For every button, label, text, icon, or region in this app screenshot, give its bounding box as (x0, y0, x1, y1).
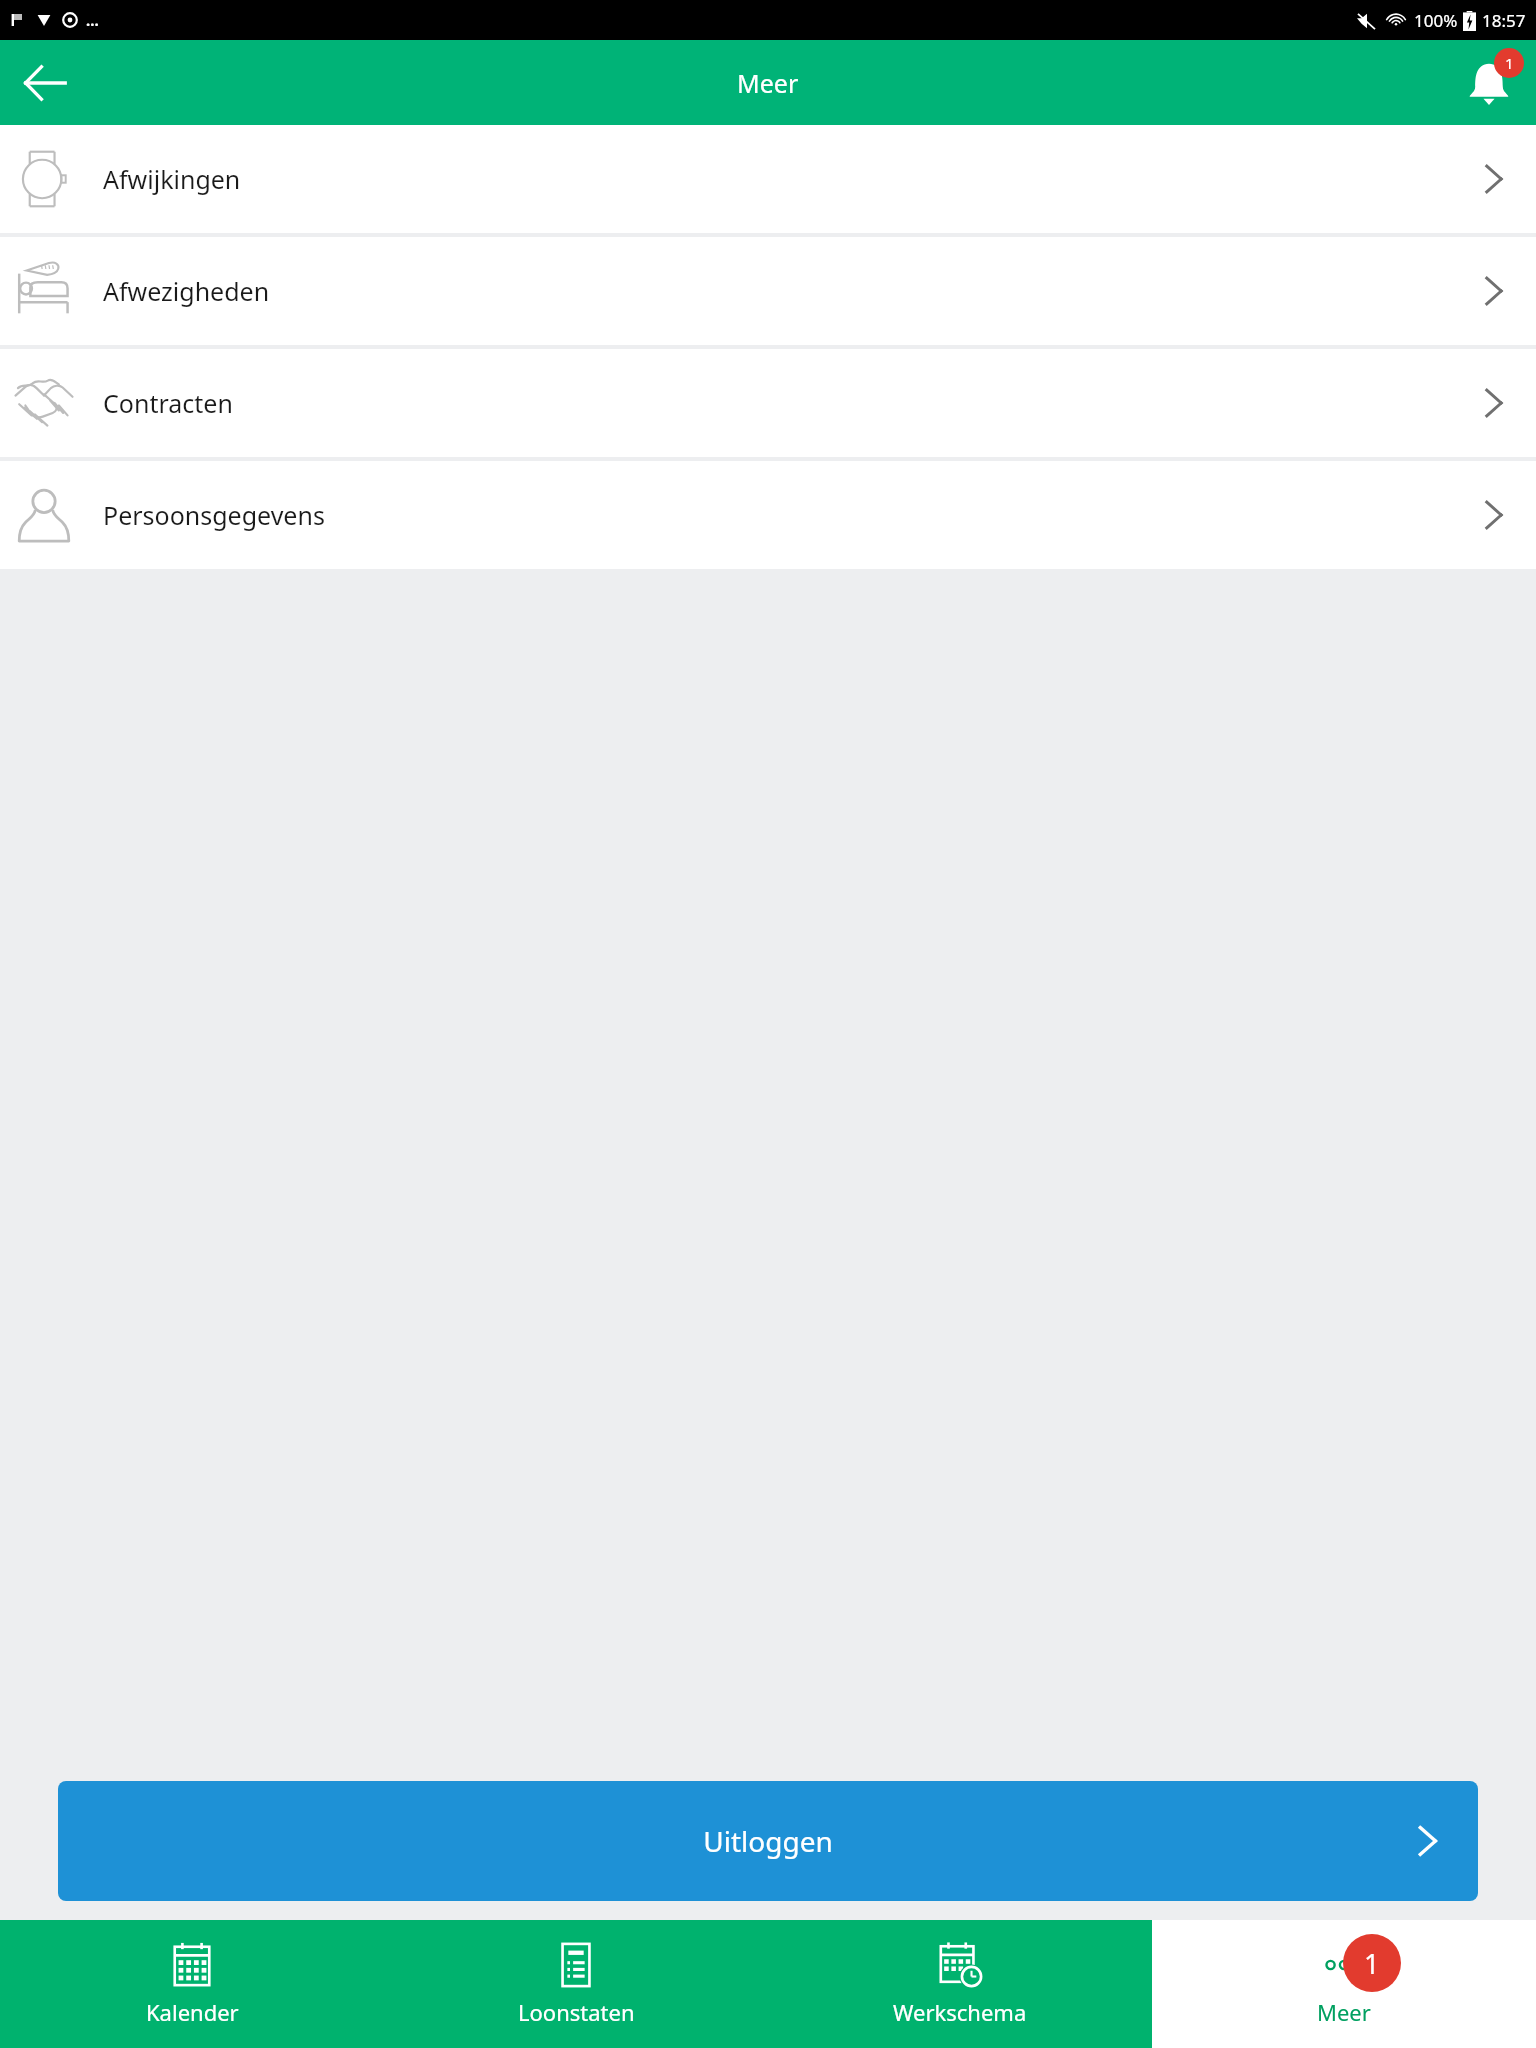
staticText: Meer (1317, 1997, 1371, 2027)
staticText: Afwezigheden (103, 274, 270, 308)
staticText: 100% (1414, 9, 1458, 32)
staticText: Persoonsgegevens (103, 498, 325, 532)
staticText: Afwijkingen (103, 162, 241, 196)
staticText: Loonstaten (518, 1997, 635, 2027)
staticText: 18:57 (1482, 9, 1526, 32)
staticText: 1 (1364, 1945, 1380, 1982)
staticText: Uitloggen (703, 1822, 833, 1860)
button[interactable]: Afwijkingen (0, 125, 1536, 233)
button[interactable]: Persoonsgegevens (0, 461, 1536, 569)
button[interactable]: Contracten (0, 349, 1536, 457)
staticText: ... (86, 10, 99, 30)
button[interactable]: Uitloggen (58, 1781, 1478, 1901)
button[interactable]: Werkschema (768, 1920, 1152, 2048)
button[interactable]: Afwezigheden (0, 237, 1536, 345)
button[interactable]: Kalender (0, 1920, 384, 2048)
staticText: Contracten (103, 386, 233, 420)
button[interactable]: Notifications (1452, 46, 1526, 120)
staticText: Kalender (146, 1997, 239, 2027)
button[interactable]: Meer (1152, 1920, 1536, 2048)
staticText: 1 (1505, 53, 1514, 73)
staticText: Werkschema (893, 1997, 1027, 2027)
staticText: Meer (737, 66, 799, 100)
button[interactable]: Back (14, 52, 76, 114)
button[interactable]: Loonstaten (384, 1920, 768, 2048)
